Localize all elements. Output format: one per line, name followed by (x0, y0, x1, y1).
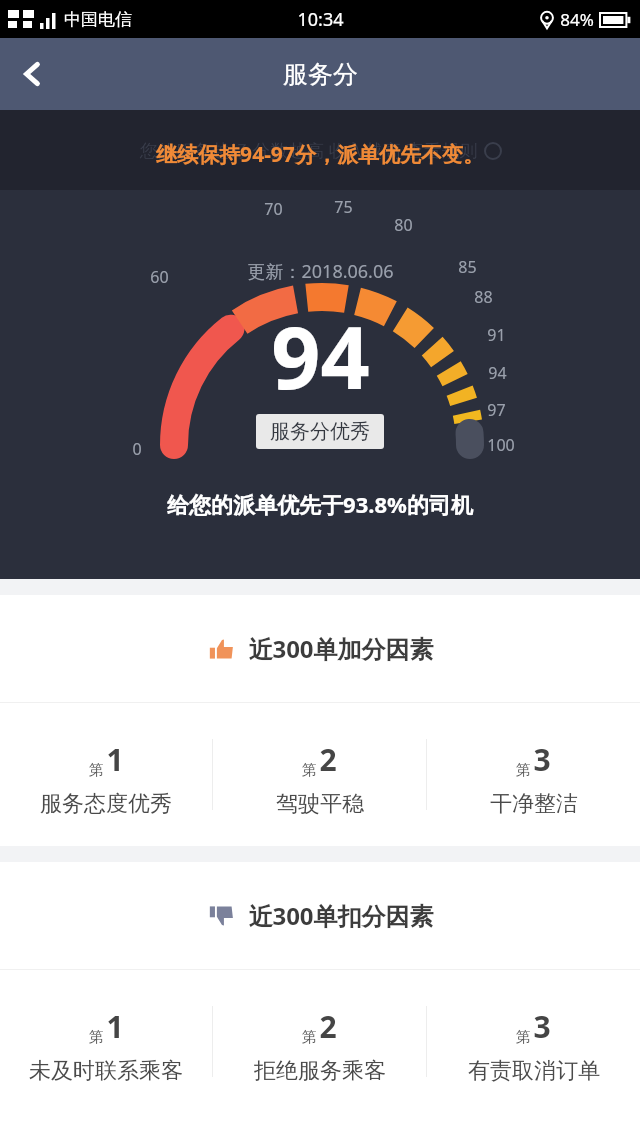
staticText: 更新：2018.06.06 (247, 259, 394, 284)
button[interactable]: 近300单加分因素 (0, 595, 640, 702)
button[interactable]: 第 (427, 703, 640, 846)
staticText: 100 (487, 434, 515, 456)
button[interactable]: Back (0, 42, 64, 106)
button[interactable]: 服务分优秀 (270, 419, 370, 444)
staticText: 干净整洁 (490, 790, 578, 818)
staticText: 60 (150, 266, 169, 288)
staticText: 给您的派单优先于93.8%的司机 (167, 489, 473, 519)
staticText: 第 (302, 761, 317, 780)
button[interactable]: 第 (427, 970, 640, 1113)
staticText: 10:34 (297, 7, 344, 32)
staticText: 2 (319, 1006, 337, 1047)
button[interactable]: 近300单扣分因素 (0, 862, 640, 969)
staticText: 驾驶平稳 (276, 790, 364, 818)
staticText: 近300单加分因素 (248, 632, 434, 665)
staticText: 84% (560, 8, 594, 31)
staticText: 继续保持94-97分，派单优先不变。 (156, 140, 484, 169)
button[interactable]: 您的服务越好 分数越高 收入越高 查看规则 (0, 110, 640, 190)
staticText: 3 (533, 739, 551, 780)
staticText: 75 (334, 196, 353, 218)
staticText: 拒绝服务乘客 (254, 1057, 386, 1085)
button[interactable]: 第 (213, 970, 426, 1113)
button[interactable]: 第 (0, 703, 212, 846)
staticText: 1 (106, 1006, 124, 1047)
staticText: 88 (474, 286, 493, 308)
staticText: 第 (516, 761, 531, 780)
staticText: 您的服务越好 分数越高 收入越高 查看规则 (139, 138, 478, 163)
staticText: 0 (132, 438, 142, 460)
staticText: 第 (89, 761, 104, 780)
staticText: 第 (302, 1028, 317, 1047)
staticText: 近300单扣分因素 (248, 899, 434, 932)
button[interactable]: 第 (213, 703, 426, 846)
staticText: 有责取消订单 (468, 1057, 600, 1085)
staticText: 94 (271, 297, 370, 414)
staticText: 服务分优秀 (270, 419, 370, 444)
staticText: 80 (394, 214, 413, 236)
staticText: 2 (319, 739, 337, 780)
staticText: 中国电信 (64, 9, 132, 30)
staticText: 91 (487, 324, 506, 346)
staticText: 85 (458, 256, 477, 278)
staticText: 3 (533, 1006, 551, 1047)
staticText: 1 (106, 739, 124, 780)
staticText: 70 (264, 198, 283, 220)
staticText: 94 (488, 362, 507, 384)
staticText: 97 (487, 399, 506, 421)
staticText: 服务态度优秀 (40, 790, 172, 818)
staticText: 第 (516, 1028, 531, 1047)
button[interactable]: 第 (0, 970, 212, 1113)
staticText: 服务分 (283, 59, 358, 90)
staticText: 第 (89, 1028, 104, 1047)
staticText: 未及时联系乘客 (29, 1057, 183, 1085)
